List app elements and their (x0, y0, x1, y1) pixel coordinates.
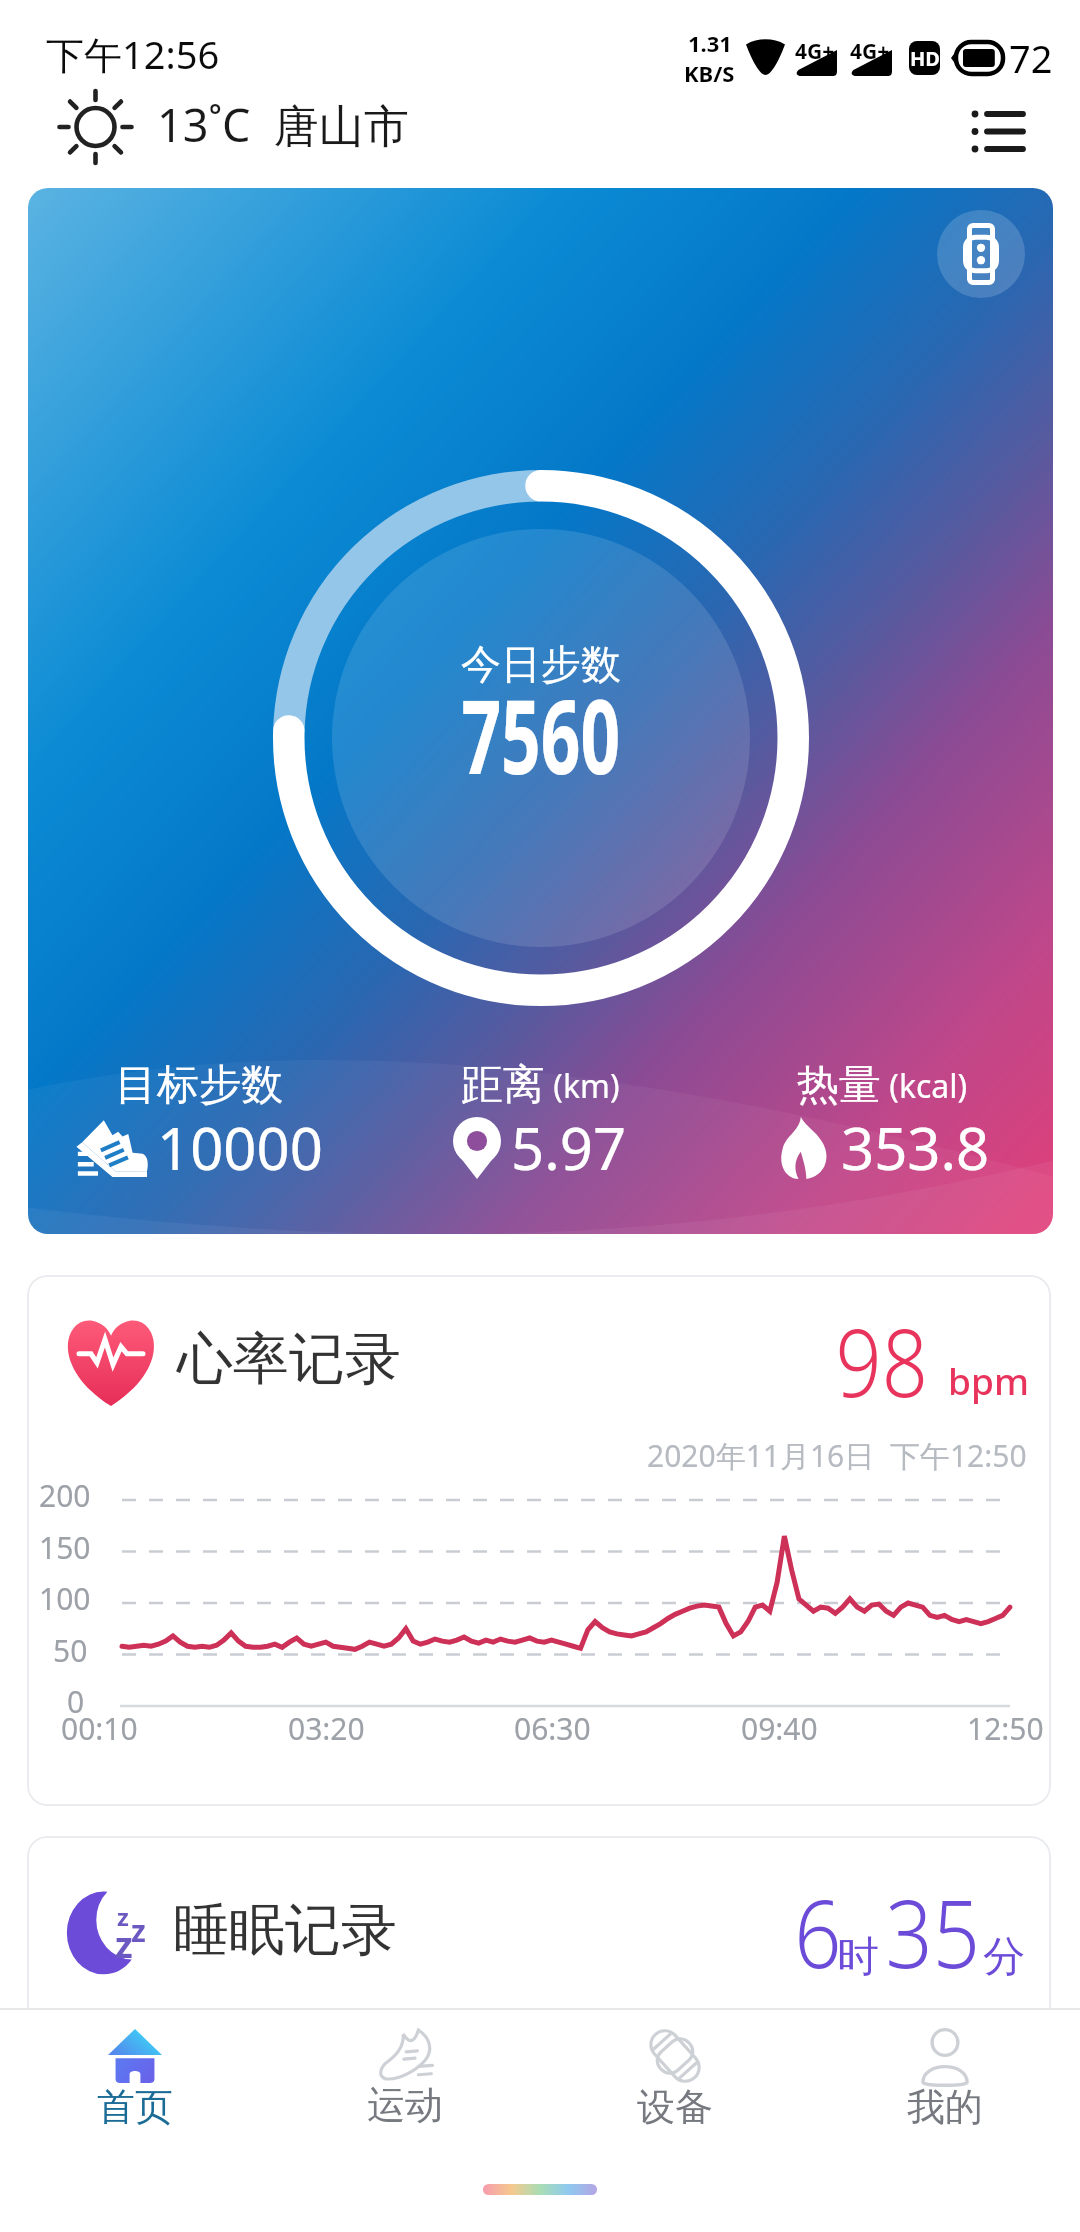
button[interactable]: 心率记录 (27, 1275, 1051, 1806)
staticText: bpm (948, 1355, 1029, 1405)
staticText: 98 (836, 1297, 928, 1425)
staticText: z (115, 1920, 133, 1969)
button[interactable]: 我的 (810, 2010, 1080, 2130)
staticText: 运动 (367, 2081, 443, 2129)
staticText: KB/S (684, 58, 735, 88)
staticText: (kcal) (881, 1064, 968, 1108)
staticText: 6 (794, 1868, 842, 1996)
staticText: 距离 (461, 1059, 545, 1112)
button[interactable]: Band device (28, 188, 1053, 1234)
staticText: 150 (39, 1527, 91, 1568)
staticText: 72 (1009, 32, 1053, 84)
staticText: 10000 (157, 1108, 323, 1187)
staticText: z (117, 1900, 129, 1933)
staticText: 0 (67, 1681, 85, 1722)
staticText: 35 (885, 1868, 980, 1996)
staticText: 首页 (97, 2083, 173, 2130)
staticText: 我的 (907, 2083, 983, 2130)
staticText: 5.97 (511, 1108, 627, 1187)
staticText: 00:10 (61, 1708, 138, 1749)
button[interactable]: z (27, 1836, 1051, 2156)
staticText: 7560 (461, 665, 620, 804)
button[interactable]: 首页 (0, 2010, 270, 2130)
staticText: 50 (53, 1630, 88, 1671)
staticText: HD (910, 45, 940, 72)
staticText: 睡眠记录 (173, 1895, 397, 1966)
staticText: 心率记录 (177, 1324, 401, 1395)
staticText: 今日步数 (461, 639, 621, 689)
staticText: 12:50 (967, 1708, 1044, 1749)
staticText: 353.8 (841, 1108, 990, 1187)
staticText: 4G+ (850, 37, 890, 66)
staticText: (km) (545, 1064, 620, 1108)
button[interactable]: Menu (958, 100, 1036, 162)
staticText: 06:30 (514, 1708, 591, 1749)
staticText: 设备 (637, 2083, 713, 2130)
staticText: 时 (837, 1931, 879, 1984)
button[interactable]: Band device (937, 210, 1025, 298)
staticText: 热量 (797, 1059, 881, 1112)
button[interactable]: 运动 (270, 2010, 540, 2130)
button[interactable]: 设备 (540, 2010, 810, 2130)
staticText: 09:40 (741, 1708, 818, 1749)
staticText: 目标步数 (115, 1059, 283, 1112)
staticText: 分 (983, 1931, 1025, 1984)
staticText: 2020年11月16日 下午12:50 (647, 1435, 1027, 1476)
staticText: 1.31 (688, 28, 732, 58)
staticText: 下午12:56 (46, 28, 220, 80)
staticText: z (131, 1910, 146, 1951)
staticText: 03:20 (288, 1708, 365, 1749)
staticText: 13˚C 唐山市 (157, 94, 409, 155)
staticText: 4G+ (795, 37, 835, 66)
staticText: 100 (39, 1578, 91, 1619)
staticText: 200 (39, 1475, 91, 1516)
